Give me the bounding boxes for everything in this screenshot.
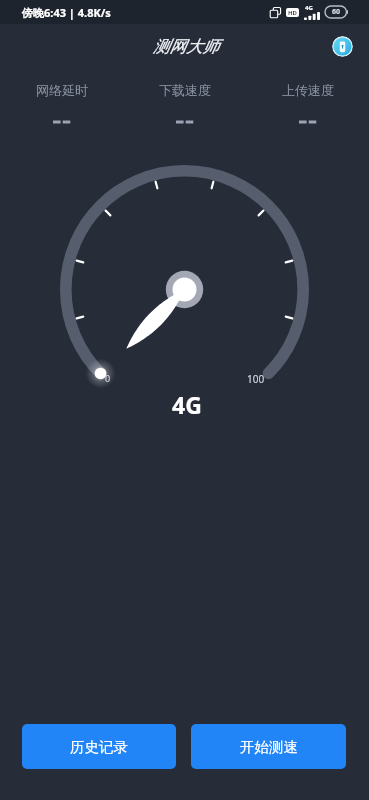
staticText: 4G xyxy=(305,4,313,12)
button[interactable]: 安全检测 xyxy=(332,36,353,57)
staticText: 下载速度 xyxy=(159,82,211,98)
button[interactable]: 历史记录 xyxy=(22,724,176,769)
staticText: 0 xyxy=(105,372,111,384)
staticText: 开始测速 xyxy=(240,738,298,756)
staticText: 4G xyxy=(172,389,202,420)
staticText: 历史记录 xyxy=(70,738,128,756)
staticText: 上传速度 xyxy=(282,82,334,98)
staticText: 测网大师 xyxy=(153,36,219,57)
button[interactable]: 开始测速 xyxy=(191,724,346,769)
staticText: 傍晚6:43 | 4.8K/s xyxy=(22,5,111,20)
staticText: 60 xyxy=(332,7,341,17)
staticText: 100 xyxy=(247,372,265,386)
staticText: HD xyxy=(288,9,297,17)
staticText: 网络延时 xyxy=(36,82,88,98)
